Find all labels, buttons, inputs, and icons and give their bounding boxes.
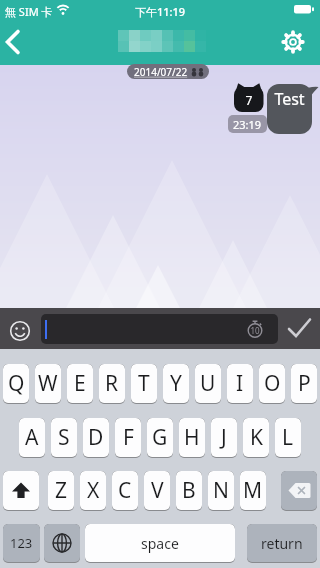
button[interactable]: M (240, 471, 266, 511)
staticText: Q (8, 369, 25, 398)
button[interactable]: F (115, 418, 141, 458)
button[interactable] (285, 316, 315, 342)
staticText: J (221, 423, 227, 452)
staticText: U (200, 369, 216, 398)
staticText: L (282, 423, 294, 452)
staticText: 7 (230, 92, 268, 108)
button[interactable]: S (51, 418, 77, 458)
button[interactable]: K (243, 418, 269, 458)
staticText: D (88, 423, 104, 452)
button[interactable] (44, 524, 80, 563)
staticText: R (105, 369, 119, 398)
staticText: 10 (245, 325, 265, 336)
staticText: G (152, 423, 168, 452)
staticText: 無 SIM 卡 (5, 4, 53, 19)
button[interactable]: G (147, 418, 173, 458)
button[interactable]: B (176, 471, 202, 511)
button[interactable] (275, 24, 311, 64)
staticText: Z (55, 476, 68, 505)
staticText: Test (267, 88, 312, 110)
button[interactable]: C (112, 471, 138, 511)
button[interactable]: J (211, 418, 237, 458)
staticText: W (38, 369, 58, 398)
button[interactable]: A (19, 418, 45, 458)
button[interactable] (281, 471, 317, 511)
staticText: H (184, 423, 200, 452)
staticText: space (141, 534, 179, 553)
button[interactable]: N (208, 471, 234, 511)
button[interactable]: E (67, 364, 93, 404)
staticText: M (243, 476, 263, 505)
staticText: 23:19 (233, 117, 262, 132)
button[interactable]: L (275, 418, 301, 458)
staticText: O (264, 369, 281, 398)
button[interactable]: I (227, 364, 253, 404)
button[interactable]: T (131, 364, 157, 404)
button[interactable]: V (144, 471, 170, 511)
staticText: S (58, 423, 70, 452)
button[interactable]: Z (48, 471, 74, 511)
button[interactable] (0, 24, 36, 64)
staticText: I (236, 369, 244, 398)
staticText: 下午11:19 (0, 4, 320, 19)
button[interactable]: 123 (3, 524, 40, 563)
staticText: F (123, 423, 134, 452)
staticText: P (298, 369, 311, 398)
button[interactable] (6, 317, 34, 345)
button[interactable]: H (179, 418, 205, 458)
staticText: A (25, 423, 39, 452)
button[interactable]: Q (3, 364, 29, 404)
button[interactable]: W (35, 364, 61, 404)
staticText: Y (170, 369, 182, 398)
button[interactable]: Y (163, 364, 189, 404)
staticText: X (87, 476, 100, 505)
button[interactable]: P (291, 364, 317, 404)
button[interactable]: 7 (230, 80, 270, 116)
button[interactable]: O (259, 364, 285, 404)
staticText: N (213, 476, 229, 505)
staticText: C (118, 476, 132, 505)
button[interactable]: R (99, 364, 125, 404)
button[interactable]: space (85, 524, 235, 563)
button[interactable] (3, 471, 39, 511)
button[interactable]: U (195, 364, 221, 404)
staticText: T (138, 369, 150, 398)
button[interactable]: X (80, 471, 106, 511)
staticText: 2014/07/22 (134, 65, 188, 79)
staticText: return (261, 534, 303, 553)
staticText: B (182, 476, 196, 505)
staticText: V (151, 476, 164, 505)
button[interactable]: return (247, 524, 317, 563)
button[interactable]: Test (267, 84, 320, 135)
staticText: E (74, 369, 86, 398)
staticText: 123 (10, 534, 33, 552)
staticText: K (250, 423, 263, 452)
button[interactable]: 10 (41, 314, 278, 344)
button[interactable]: D (83, 418, 109, 458)
